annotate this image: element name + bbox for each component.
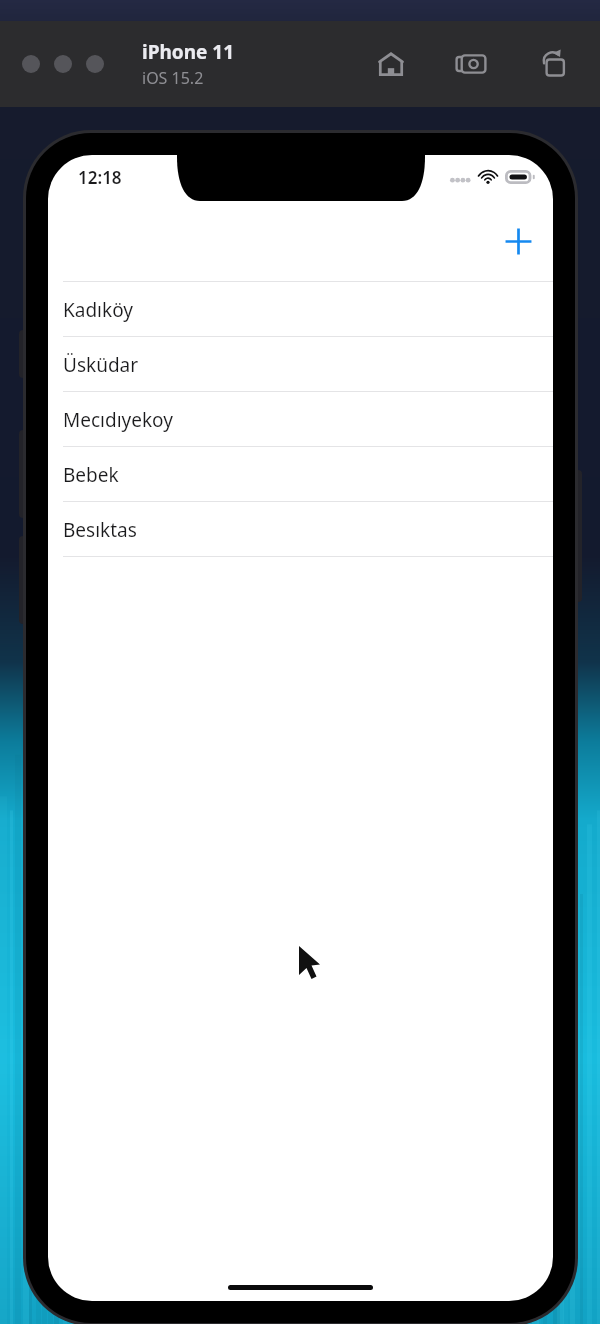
staticText: Üsküdar <box>63 352 139 378</box>
staticText: Kadıköy <box>63 297 133 323</box>
button[interactable]: Window control 1 <box>22 55 40 73</box>
button[interactable]: Mecıdıyekoy <box>48 392 553 447</box>
staticText: iOS 15.2 <box>142 67 204 89</box>
button[interactable]: Add city <box>495 218 541 264</box>
button[interactable]: Home <box>370 43 412 85</box>
button[interactable]: Üsküdar <box>48 337 553 392</box>
button[interactable]: Rotate device <box>532 43 574 85</box>
button[interactable]: Window control 3 <box>86 55 104 73</box>
button[interactable]: Window control 2 <box>54 55 72 73</box>
button[interactable]: Besıktas <box>48 502 553 557</box>
button[interactable]: Bebek <box>48 447 553 502</box>
button[interactable]: Screenshot <box>450 43 492 85</box>
button[interactable]: Kadıköy <box>48 282 553 337</box>
staticText: iPhone 11 <box>142 39 235 65</box>
staticText: Bebek <box>63 462 119 488</box>
staticText: Besıktas <box>63 517 137 543</box>
staticText: 12:18 <box>78 166 122 189</box>
staticText: Mecıdıyekoy <box>63 407 173 433</box>
